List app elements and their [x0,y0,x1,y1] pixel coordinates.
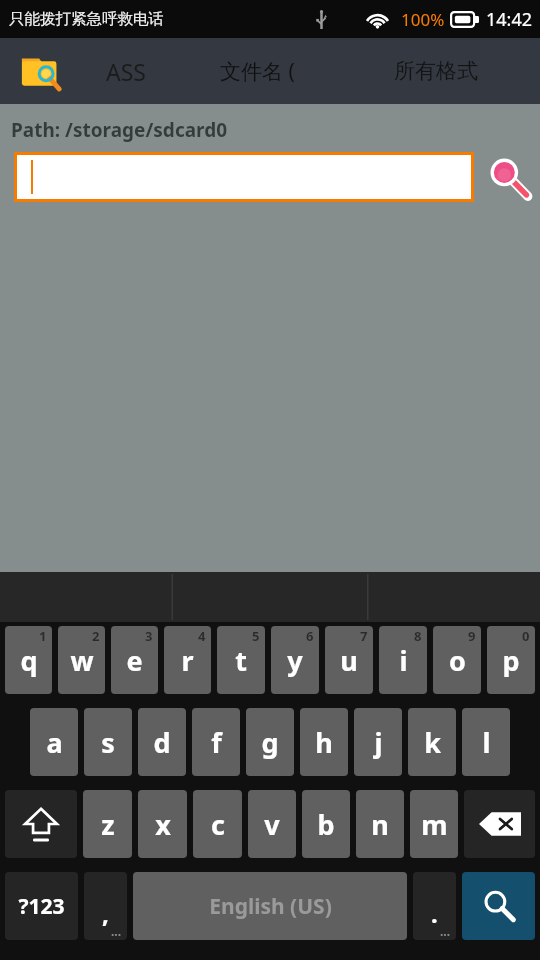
button[interactable]: q [5,626,52,694]
button[interactable]: b [302,790,350,858]
button[interactable]: , [84,872,127,940]
staticText: 只能拨打紧急呼救电话 [9,9,164,29]
button[interactable]: o [433,626,481,694]
staticText: p [502,642,520,679]
staticText: 3 [145,627,153,645]
button[interactable]: Search [462,872,535,940]
staticText: 2 [92,627,100,645]
button[interactable]: File search [16,48,70,94]
staticText: 6 [306,627,314,645]
button[interactable]: p [487,626,535,694]
button[interactable]: v [248,790,296,858]
staticText: 14:42 [486,7,533,32]
staticText: g [261,724,279,761]
staticText: b [317,806,335,843]
button[interactable]: d [138,708,186,776]
staticText: j [374,724,383,761]
staticText: English (US) [209,892,332,921]
staticText: n [371,806,389,843]
button[interactable]: i [379,626,427,694]
button[interactable]: s [84,708,132,776]
button[interactable]: Shift [5,790,77,858]
staticText: r [181,642,194,679]
button[interactable]: j [354,708,402,776]
staticText: 7 [360,627,368,645]
staticText: z [101,806,115,843]
staticText: y [287,642,303,679]
staticText: ... [440,923,451,939]
staticText: o [449,642,466,679]
staticText: c [211,806,225,843]
staticText: k [424,724,441,761]
button[interactable]: c [193,790,242,858]
button[interactable]: Search [484,153,532,201]
button[interactable]: k [408,708,456,776]
button[interactable]: f [192,708,240,776]
button[interactable]: n [356,790,404,858]
button[interactable]: Backspace [464,790,535,858]
staticText: 文件名 ( [220,57,295,86]
staticText: 4 [198,627,206,645]
staticText: 0 [522,627,530,645]
staticText: 9 [468,627,476,645]
button[interactable]: u [325,626,373,694]
staticText: a [46,724,63,761]
staticText: ... [111,923,122,939]
button[interactable]: a [30,708,78,776]
button[interactable]: m [410,790,458,858]
staticText: v [264,806,280,843]
button[interactable]: 所有格式 [332,38,540,104]
staticText: 1 [39,627,47,645]
staticText: 5 [252,627,260,645]
staticText: t [235,642,247,679]
button[interactable]: English (US) [133,872,407,940]
staticText: 所有格式 [394,58,478,84]
button[interactable]: ASS [70,38,182,104]
button[interactable]: Search field [14,152,474,202]
staticText: 100% [401,8,445,31]
staticText: ASS [106,56,146,87]
staticText: i [399,642,408,679]
button[interactable]: w [58,626,105,694]
button[interactable]: l [462,708,510,776]
staticText: Path: /storage/sdcard0 [11,117,228,143]
staticText: x [155,806,171,843]
staticText: d [153,724,171,761]
staticText: e [126,642,143,679]
button[interactable]: x [138,790,187,858]
button[interactable]: ?123 [5,872,78,940]
staticText: w [70,642,94,679]
button[interactable]: . [413,872,456,940]
button[interactable]: t [217,626,265,694]
button[interactable]: y [271,626,319,694]
button[interactable]: 文件名 ( [182,38,332,104]
button[interactable]: h [300,708,348,776]
staticText: 8 [414,627,422,645]
button[interactable]: g [246,708,294,776]
staticText: f [211,724,222,761]
staticText: ?123 [18,892,65,921]
staticText: s [101,724,115,761]
button[interactable]: r [164,626,211,694]
button[interactable]: z [83,790,132,858]
staticText: . [431,897,438,930]
staticText: u [340,642,358,679]
staticText: , [102,897,109,930]
staticText: q [20,642,38,679]
staticText: m [421,806,448,843]
staticText: h [315,724,333,761]
staticText: l [482,724,491,761]
button[interactable]: e [111,626,158,694]
